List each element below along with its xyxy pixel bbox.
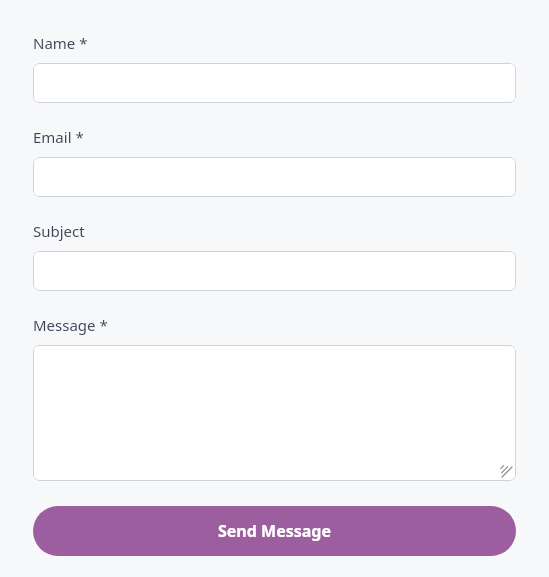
staticText: Send Message <box>218 520 331 542</box>
staticText: Email * <box>33 127 84 147</box>
staticText: Subject <box>33 221 85 241</box>
button[interactable]: Message input field <box>33 345 516 481</box>
button[interactable]: Email input field <box>33 157 516 197</box>
button[interactable]: Name input field <box>33 63 516 103</box>
staticText: Message * <box>33 315 108 335</box>
button[interactable]: Send Message <box>33 506 516 556</box>
staticText: Name * <box>33 33 88 53</box>
button[interactable]: Subject input field <box>33 251 516 291</box>
